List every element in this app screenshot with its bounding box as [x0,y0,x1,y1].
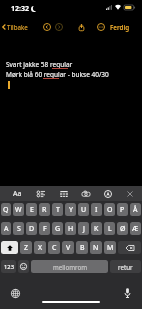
staticText: E [30,205,34,215]
staticText: R [42,205,47,215]
button[interactable]: Aa [11,187,24,201]
staticText: Ferdig [110,23,130,31]
button[interactable]: Emoji [18,260,29,273]
button[interactable]: 123 [1,260,16,273]
button[interactable]: N [90,241,102,254]
staticText: L [108,224,112,234]
button[interactable]: Next keyboard [9,287,21,299]
staticText: Y [69,205,73,215]
staticText: retur [118,263,133,271]
staticText: Z [24,243,29,253]
button[interactable]: C [48,241,60,254]
staticText: X [38,243,43,253]
button[interactable]: Shift [1,241,18,254]
staticText: Æ [132,224,139,234]
button[interactable]: Undo [43,23,51,31]
button[interactable]: mellomrom [31,260,108,273]
button[interactable]: Q [1,203,11,216]
button[interactable]: Ø [117,222,128,235]
staticText: Å [133,205,138,215]
staticText: M [107,243,114,253]
button[interactable]: O [104,203,115,216]
button[interactable]: J [78,222,89,235]
staticText: I [95,205,98,215]
button[interactable]: K [91,222,102,235]
staticText: T [56,205,60,215]
button[interactable]: Close [124,188,136,200]
staticText: G [55,224,61,234]
staticText: K [94,224,99,234]
button[interactable]: W [13,203,24,216]
staticText: A [4,224,9,234]
button[interactable]: Checklist [35,188,47,200]
button[interactable]: Dictation [121,287,133,299]
button[interactable]: More options [97,23,105,31]
button[interactable]: Z [20,241,32,254]
staticText: B [80,243,85,253]
button[interactable]: A [1,222,11,235]
staticText: U [81,205,87,215]
button[interactable]: X [34,241,46,254]
staticText: F [43,224,47,234]
button[interactable]: Tilbake [1,21,29,33]
staticText: Q [3,205,9,215]
staticText: D [29,224,35,234]
button[interactable]: B [76,241,88,254]
button[interactable]: V [62,241,74,254]
button[interactable]: Backspace [118,241,141,254]
staticText: mellomrom [53,263,87,271]
button[interactable]: E [26,203,37,216]
button[interactable]: Share [77,23,85,31]
button[interactable]: Table [58,188,70,200]
button[interactable]: U [78,203,89,216]
staticText: J [83,224,85,234]
button[interactable]: T [52,203,63,216]
staticText: 12:32 [11,4,29,14]
staticText: O [107,205,113,215]
button[interactable]: Camera [80,188,92,200]
button[interactable]: Å [130,203,141,216]
button[interactable]: I [91,203,102,216]
staticText: N [93,243,99,253]
staticText: S [17,224,21,234]
button[interactable]: R [39,203,50,216]
button[interactable]: Y [65,203,76,216]
staticText: W [15,205,22,215]
staticText: Ø [120,224,126,234]
staticText: V [66,243,71,253]
button[interactable]: Ferdig [109,22,131,32]
button[interactable]: H [65,222,76,235]
staticText: 123 [4,263,14,271]
button[interactable]: P [117,203,128,216]
button[interactable]: S [13,222,24,235]
button[interactable]: M [104,241,116,254]
staticText: Mørk blå 60 regular - bukse 40/30 [6,70,109,79]
staticText: Tilbake [7,23,28,31]
staticText: P [120,205,125,215]
staticText: Aa [13,189,22,199]
button[interactable]: retur [110,260,141,273]
button[interactable]: L [104,222,115,235]
staticText: H [68,224,74,234]
staticText: C [52,243,57,253]
button[interactable]: G [52,222,63,235]
staticText: Svart jakke 58 regular [6,60,73,69]
button[interactable]: Redo [55,23,63,31]
button[interactable]: F [39,222,50,235]
button[interactable]: Æ [130,222,141,235]
button[interactable]: D [26,222,37,235]
button[interactable]: Markup [102,188,114,200]
